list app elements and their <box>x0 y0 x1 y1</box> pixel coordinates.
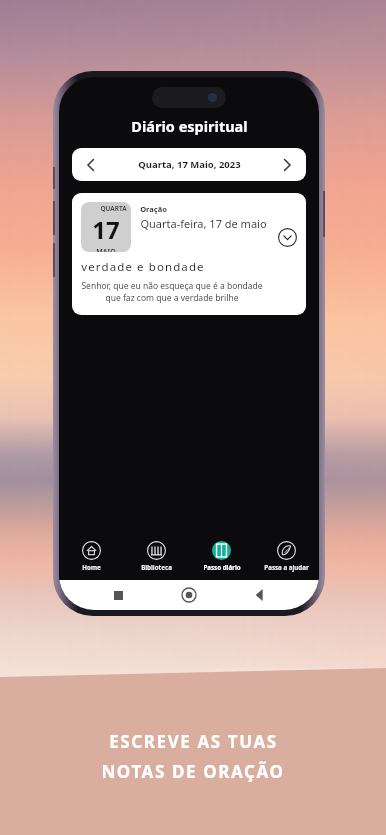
button[interactable]: QUARTA <box>72 193 306 315</box>
staticText: Passa a ajudar <box>264 563 309 571</box>
staticText: Passo diário <box>203 563 241 571</box>
staticText: Diário espiritual <box>131 116 248 136</box>
button[interactable]: Voltar <box>248 583 272 607</box>
staticText: 17 <box>92 213 120 246</box>
staticText: Quarta-feira, 17 de maio <box>140 216 267 231</box>
staticText: QUARTA <box>100 204 127 213</box>
button[interactable]: Recentes <box>106 583 130 607</box>
button[interactable]: Dia anterior <box>81 155 101 175</box>
staticText: verdade e bondade <box>81 259 205 275</box>
button[interactable]: Início <box>177 583 201 607</box>
staticText: Senhor, que eu não esqueça que é a bonda… <box>81 280 263 304</box>
staticText: Biblioteca <box>141 563 172 571</box>
button[interactable]: Passa a ajudar <box>254 538 319 580</box>
staticText: Home <box>82 563 101 571</box>
button[interactable]: Home <box>59 538 124 580</box>
staticText: MAIO <box>96 247 116 252</box>
staticText: Oração <box>140 204 167 214</box>
button[interactable]: Dia anterior <box>72 148 306 181</box>
staticText: Quarta, 17 Maio, 2023 <box>138 158 241 171</box>
button[interactable]: Expandir <box>278 228 297 247</box>
button[interactable]: Passo diário <box>189 538 254 580</box>
button[interactable]: Próximo dia <box>277 155 297 175</box>
staticText: NOTAS DE ORAÇÃO <box>101 760 285 783</box>
staticText: ESCREVE AS TUAS <box>109 730 278 753</box>
button[interactable]: Biblioteca <box>124 538 189 580</box>
